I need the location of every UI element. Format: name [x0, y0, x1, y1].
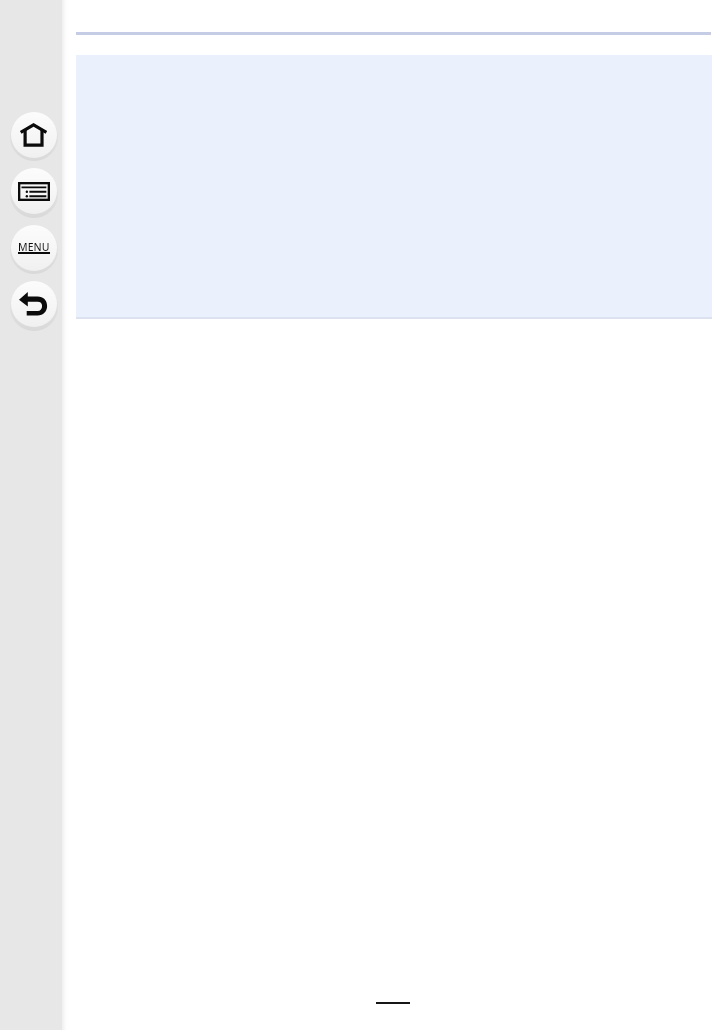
button[interactable]: Home	[11, 112, 57, 158]
staticText: MENU	[18, 240, 50, 254]
button[interactable]: Back	[11, 281, 57, 327]
button[interactable]: Table of contents	[11, 168, 57, 214]
button[interactable]: Menu	[11, 225, 57, 271]
